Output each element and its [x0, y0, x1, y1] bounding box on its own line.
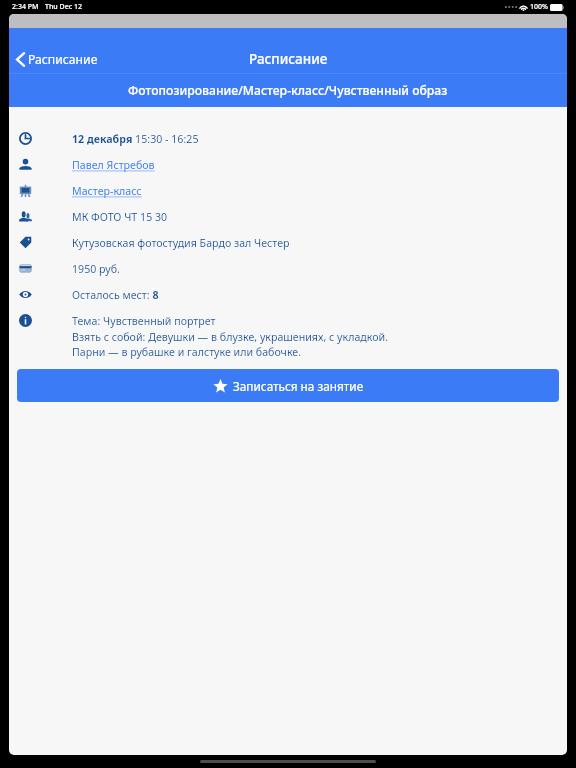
other: Back: [16, 52, 25, 67]
staticText: 1950 руб.: [72, 262, 120, 277]
staticText: Тема: Чувственный портрет Взять с собой:…: [72, 314, 388, 359]
button[interactable]: Записаться на занятие: [17, 369, 559, 402]
button[interactable]: Павел Ястребов: [72, 158, 155, 173]
staticText: Осталось мест: 8: [72, 288, 159, 303]
staticText: Записаться на занятие: [233, 378, 364, 394]
staticText: 100%: [530, 2, 548, 12]
staticText: Расписание: [28, 51, 98, 68]
staticText: МК ФОТО ЧТ 15 30: [72, 210, 168, 225]
staticText: Кутузовская фотостудия Бардо зал Честер: [72, 236, 290, 251]
staticText: Фотопозирование/Мастер-класс/Чувственный…: [128, 82, 448, 99]
staticText: Павел Ястребов: [72, 158, 155, 173]
staticText: Thu Dec 12: [45, 2, 82, 12]
button[interactable]: Back: [11, 48, 106, 71]
staticText: 2:34 PM: [12, 2, 39, 12]
staticText: Расписание: [249, 50, 328, 68]
button[interactable]: Мастер-класс: [72, 184, 142, 199]
staticText: Мастер-класс: [72, 184, 142, 199]
staticText: 12 декабря 15:30 - 16:25: [72, 132, 199, 147]
